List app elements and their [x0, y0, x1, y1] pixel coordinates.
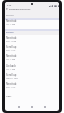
staticText: Next tab: [6, 82, 17, 86]
staticText: System: [6, 31, 14, 34]
button[interactable]: Back: [13, 103, 25, 110]
staticText: Ctrl + Alt: [6, 49, 16, 52]
staticText: Go back: [6, 64, 16, 68]
staticText: Alt + Tab: [6, 23, 16, 26]
staticText: Recents: [6, 14, 14, 17]
button[interactable]: Next tab: [5, 19, 59, 28]
staticText: Meta + Tab: [6, 77, 18, 80]
button[interactable]: Recents: [38, 103, 51, 110]
button[interactable]: Scroll up: [5, 73, 59, 82]
button[interactable]: Scroll up: [5, 45, 59, 54]
staticText: Keyboard shortcuts: [9, 8, 31, 11]
button[interactable]: Next tab: [5, 54, 59, 63]
staticText: Next tab: [6, 36, 17, 40]
staticText: Next tab: [6, 19, 17, 23]
staticText: Scroll up: [6, 73, 17, 77]
button[interactable]: Home: [25, 103, 38, 110]
staticText: Next: [6, 94, 12, 97]
staticText: Ctrl + Alt: [6, 86, 16, 89]
staticText: Ctrl + Tab: [6, 40, 17, 43]
staticText: Next tab: [6, 54, 17, 58]
staticText: Scroll up: [6, 45, 17, 49]
button[interactable]: Next tab: [5, 82, 59, 91]
staticText: Alt + Tab: [6, 58, 16, 61]
staticText: 5:48: [7, 4, 12, 7]
button[interactable]: Go back: [5, 64, 59, 73]
button[interactable]: Back: [5, 7, 9, 11]
button[interactable]: Next tab: [5, 36, 59, 45]
staticText: Alt + Tab: [6, 68, 16, 71]
